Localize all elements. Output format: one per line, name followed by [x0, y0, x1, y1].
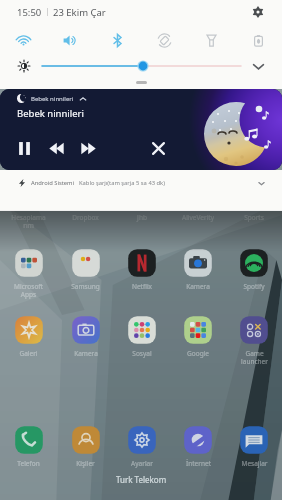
staticText: Bebek ninnileri: [17, 107, 84, 120]
staticText: 15:50: [17, 6, 42, 19]
staticText: Android Sistemi: [31, 179, 74, 187]
button[interactable]: Close: [147, 137, 169, 159]
staticText: Dropbox: [72, 213, 99, 222]
button[interactable]: Bluetooth: [94, 26, 141, 54]
button[interactable]: Next: [77, 137, 99, 159]
staticText: Kamera: [74, 349, 98, 358]
staticText: Spotify: [243, 282, 265, 291]
staticText: Jhb: [137, 213, 147, 222]
button[interactable]: Galeri: [0, 315, 57, 358]
staticText: Game launcher: [241, 349, 268, 366]
staticText: 23 Ekim Çar: [53, 6, 106, 19]
staticText: Sports: [244, 213, 264, 222]
button[interactable]: Google: [170, 315, 226, 358]
button[interactable]: Sosyal: [114, 315, 170, 358]
staticText: Samsung: [71, 282, 100, 291]
button[interactable]: Ayarlar: [114, 425, 170, 468]
button[interactable]: Microsoft Apps: [0, 248, 57, 299]
button[interactable]: Kişiler: [57, 425, 114, 468]
button[interactable]: Kamera: [57, 315, 114, 358]
button[interactable]: Bebek ninnileri: [0, 89, 282, 170]
button[interactable]: Spotify: [226, 248, 282, 291]
button[interactable]: Expand quick settings: [248, 56, 268, 76]
staticText: AliveVerity: [182, 213, 214, 222]
staticText: İnternet: [186, 459, 211, 468]
button[interactable]: Pause: [13, 137, 35, 159]
staticText: Netflix: [132, 282, 152, 291]
button[interactable]: Mesajlar: [226, 425, 282, 468]
staticText: Kişiler: [76, 459, 95, 468]
button[interactable]: Sound: [47, 26, 94, 54]
staticText: Telefon: [17, 459, 40, 468]
button[interactable]: İnternet: [170, 425, 226, 468]
staticText: Google: [187, 349, 209, 358]
staticText: Mesajlar: [241, 459, 268, 468]
button[interactable]: Netflix: [114, 248, 170, 291]
button[interactable]: Auto rotate: [141, 26, 188, 54]
button[interactable]: Wi-Fi: [0, 26, 47, 54]
staticText: Galeri: [19, 349, 38, 358]
button[interactable]: Settings: [248, 2, 268, 22]
button[interactable]: Telefon: [0, 425, 57, 468]
button[interactable]: Game launcher: [226, 315, 282, 366]
staticText: Kablo şarjı(tam şarja 5 sa 43 dk): [79, 179, 165, 187]
button[interactable]: Power saving: [235, 26, 282, 54]
staticText: Hesaplama rım: [11, 213, 46, 230]
button[interactable]: Expand notification: [254, 176, 268, 190]
button[interactable]: Samsung: [57, 248, 114, 291]
staticText: Microsoft Apps: [14, 282, 43, 299]
button[interactable]: Flashlight: [188, 26, 235, 54]
staticText: Ayarlar: [131, 459, 153, 468]
staticText: Kamera: [186, 282, 210, 291]
button[interactable]: Kamera: [170, 248, 226, 291]
staticText: Turk Telekom: [0, 474, 282, 485]
staticText: Bebek ninnileri: [31, 95, 74, 103]
staticText: Sosyal: [132, 349, 152, 358]
button[interactable]: Previous: [45, 137, 67, 159]
